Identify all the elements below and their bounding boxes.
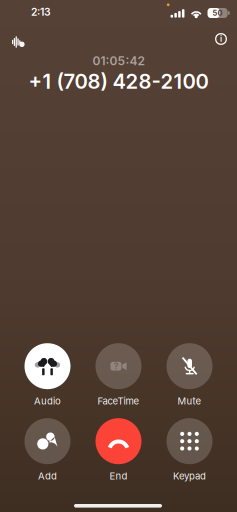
staticText: End [109, 470, 127, 482]
staticText: 2:13 [31, 6, 51, 18]
staticText: ? [113, 360, 118, 372]
button[interactable]: Audio [12, 343, 83, 407]
staticText: Keypad [173, 470, 206, 482]
staticText: Mute [177, 395, 201, 407]
button[interactable]: Add [12, 418, 83, 482]
staticText: 50 [213, 8, 223, 17]
staticText: Audio [34, 395, 61, 407]
staticText: 01:05:42 [92, 54, 144, 68]
button[interactable]: ? [83, 343, 154, 407]
button[interactable]: Keypad [154, 418, 225, 482]
staticText: i [220, 34, 222, 44]
button[interactable]: Audio route [5, 30, 31, 54]
button[interactable]: End [83, 418, 154, 482]
staticText: Add [38, 470, 57, 482]
button[interactable]: Call details [209, 27, 233, 51]
staticText: FaceTime [97, 395, 139, 407]
button[interactable]: Mute [154, 343, 225, 407]
staticText: +1 (708) 428-2100 [28, 69, 208, 94]
